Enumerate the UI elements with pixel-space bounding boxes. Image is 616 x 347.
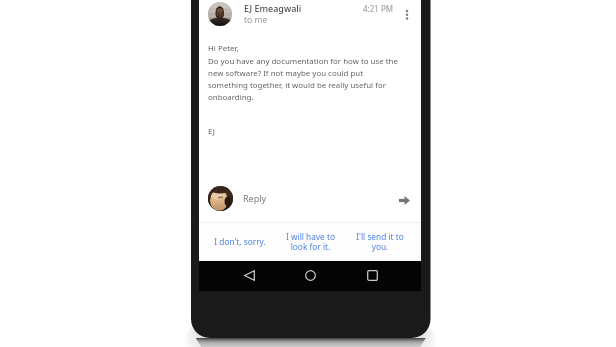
staticText: EJ Emeagwali xyxy=(244,2,302,14)
staticText: to me xyxy=(244,14,268,26)
staticText: Hi Peter, Do you have any documentation … xyxy=(208,43,398,102)
button[interactable]: More options xyxy=(400,5,414,19)
button[interactable]: I'll send it to you. xyxy=(345,223,415,260)
button[interactable]: Recent apps xyxy=(358,261,386,291)
button[interactable]: Back xyxy=(235,261,263,291)
staticText: I will have to look for it. xyxy=(286,231,335,253)
button[interactable]: I don't, sorry. xyxy=(205,223,275,260)
staticText: 4:21 PM xyxy=(363,3,394,14)
button[interactable]: Send reply xyxy=(399,193,413,207)
button[interactable]: I will have to look for it. xyxy=(275,223,345,260)
staticText: I'll send it to you. xyxy=(356,231,404,253)
button[interactable]: Home xyxy=(296,261,324,291)
staticText: I don't, sorry. xyxy=(214,236,266,247)
staticText: EJ xyxy=(208,126,216,137)
staticText: Reply xyxy=(243,192,267,204)
